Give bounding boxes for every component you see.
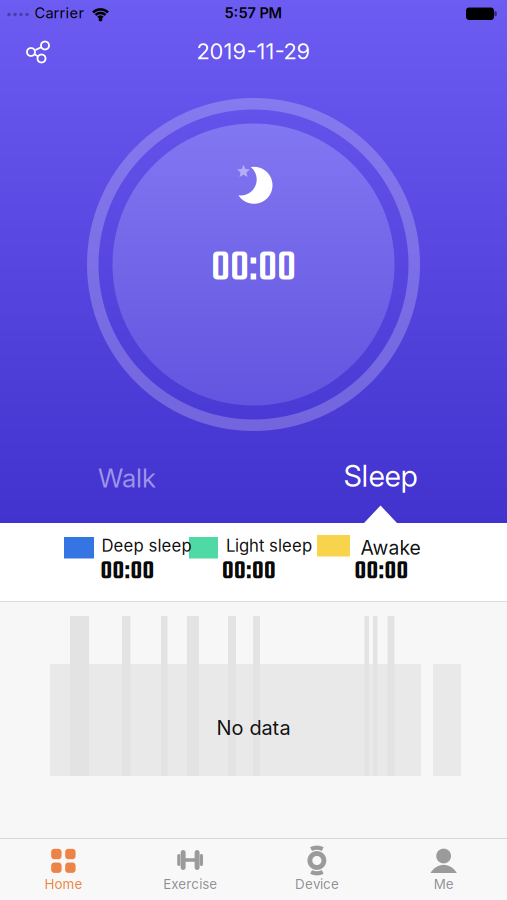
staticText: Carrier bbox=[34, 4, 84, 22]
button[interactable]: Sleep bbox=[300, 454, 460, 498]
staticText: Walk bbox=[98, 462, 156, 494]
staticText: Deep sleep bbox=[101, 535, 191, 556]
staticText: 5:57 PM bbox=[224, 4, 282, 22]
staticText: Light sleep bbox=[226, 535, 312, 556]
button[interactable]: Me bbox=[380, 844, 507, 892]
staticText: 00:00 bbox=[222, 554, 276, 590]
staticText: 00:00 bbox=[211, 236, 296, 301]
button[interactable]: Walk bbox=[47, 456, 207, 500]
button[interactable]: Exercise bbox=[127, 844, 254, 892]
button[interactable]: Device bbox=[253, 844, 380, 892]
staticText: Sleep bbox=[343, 458, 417, 494]
button[interactable]: Home bbox=[0, 844, 127, 892]
staticText: Me bbox=[434, 876, 454, 892]
staticText: No data bbox=[216, 715, 290, 740]
staticText: Home bbox=[44, 876, 82, 892]
staticText: Device bbox=[295, 876, 339, 892]
staticText: 2019-11-29 bbox=[196, 38, 310, 65]
staticText: 00:00 bbox=[100, 554, 154, 590]
staticText: Awake bbox=[360, 536, 420, 559]
button[interactable]: Share bbox=[23, 37, 57, 71]
staticText: Exercise bbox=[163, 876, 217, 892]
staticText: 00:00 bbox=[354, 554, 408, 590]
